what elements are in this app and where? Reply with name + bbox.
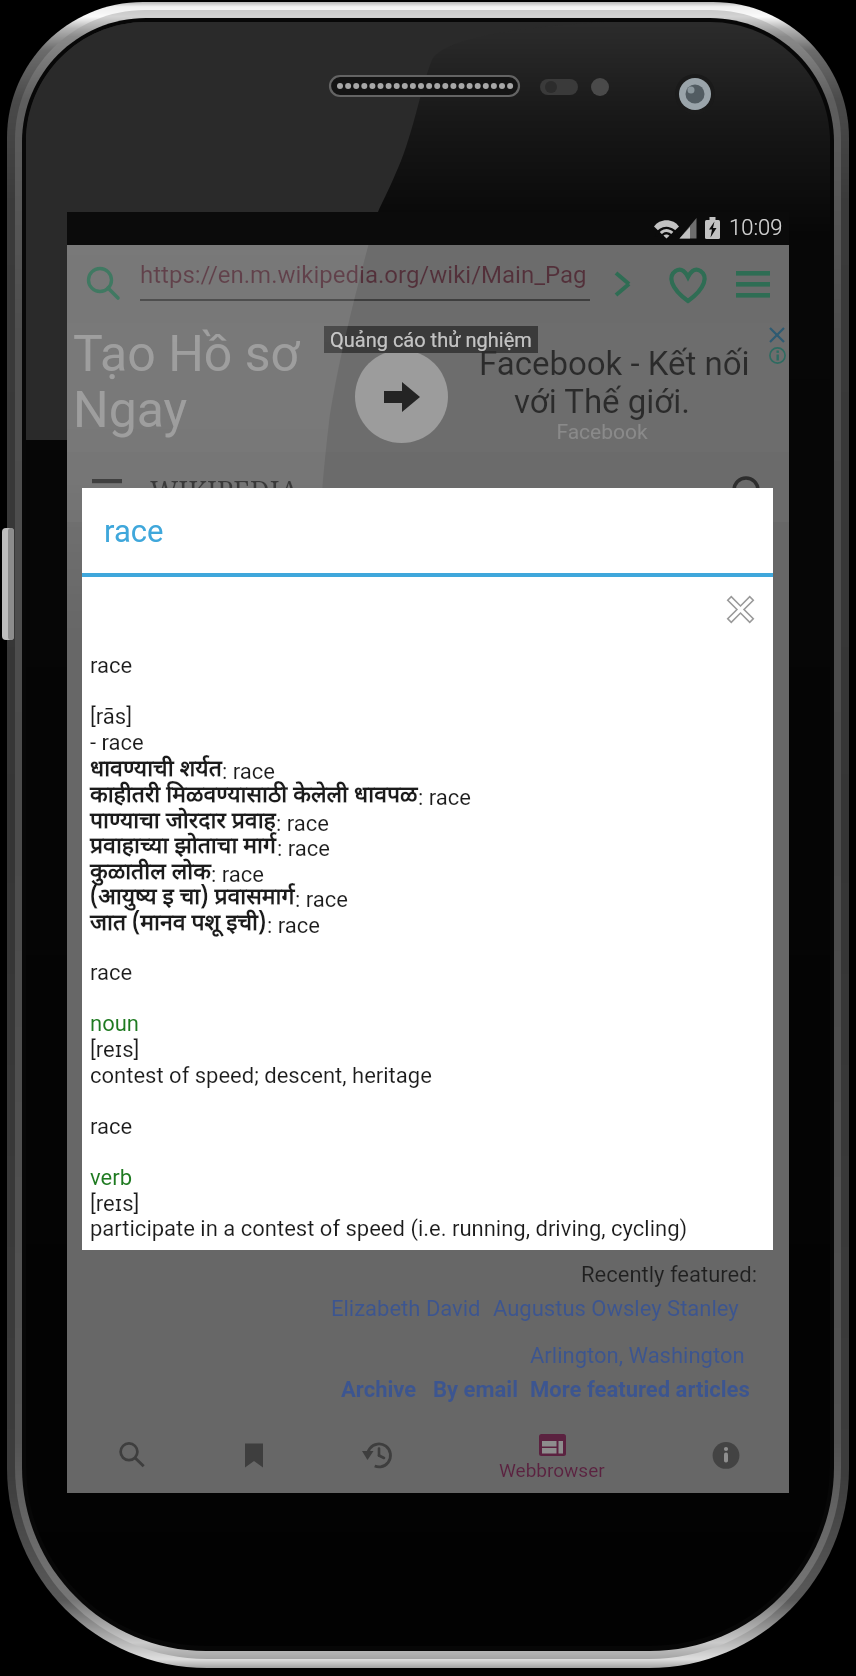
button[interactable]: Augustus Owsley Stanley	[493, 1296, 739, 1322]
button[interactable]: Close ad	[770, 328, 784, 342]
staticText: noun	[90, 1011, 139, 1037]
button[interactable]: Search	[73, 245, 135, 323]
staticText: : race	[295, 887, 348, 913]
staticText: participate in a contest of speed (i.e. …	[90, 1216, 688, 1242]
staticText: - race	[90, 730, 144, 756]
button[interactable]: Arlington, Washington	[530, 1343, 745, 1369]
staticText: : race	[267, 913, 320, 939]
button[interactable]: Ad info	[769, 347, 786, 364]
staticText: Webbrowser	[499, 1459, 605, 1481]
button[interactable]: Archive	[341, 1377, 417, 1403]
button[interactable]: Search	[67, 1415, 191, 1493]
staticText: [reɪs]	[90, 1191, 140, 1217]
staticText: Recently featured:	[581, 1262, 757, 1288]
button[interactable]: History	[317, 1415, 441, 1493]
button[interactable]: Menu	[723, 245, 783, 323]
staticText: : race	[211, 862, 264, 888]
button[interactable]: Elizabeth David	[331, 1296, 481, 1322]
staticText: Ngay	[73, 381, 188, 440]
staticText: कुळातील लोक	[90, 858, 211, 888]
staticText: : race	[276, 811, 329, 837]
button[interactable]: Ad call to action	[355, 350, 448, 443]
staticText: [reɪs]	[90, 1037, 140, 1063]
button[interactable]: Favourite	[658, 245, 718, 323]
staticText: race	[90, 653, 133, 679]
staticText: Tạo Hồ sơ	[73, 325, 300, 384]
staticText: Facebook - Kết nối	[479, 344, 750, 383]
button[interactable]: Webbrowser	[490, 1415, 614, 1493]
staticText: : race	[418, 785, 471, 811]
staticText: धावण्याची शर्यत	[90, 755, 222, 785]
staticText: WIKIPEDIA	[150, 472, 299, 509]
staticText: [rās]	[90, 704, 133, 730]
staticText: Facebook	[457, 420, 747, 445]
staticText: race	[90, 1114, 133, 1140]
staticText: : race	[222, 759, 275, 785]
staticText: प्रवाहाच्या झोताचा मार्ग	[90, 832, 277, 862]
staticText: काहीतरी मिळवण्यासाठी केलेली धावपळ	[90, 781, 418, 811]
staticText: với Thế giới.	[457, 382, 747, 421]
staticText: 10:09	[729, 215, 783, 241]
staticText: contest of speed; descent, heritage	[90, 1063, 432, 1089]
button[interactable]: By email	[433, 1377, 518, 1403]
button[interactable]: More featured articles	[530, 1377, 750, 1403]
button[interactable]: Close	[727, 596, 754, 623]
button[interactable]: Go	[594, 245, 650, 323]
staticText: पाण्याचा जोरदार प्रवाह	[90, 807, 276, 837]
button[interactable]: Info	[664, 1415, 788, 1493]
staticText: जात (मानव पशू इची)	[90, 909, 267, 939]
staticText: : race	[277, 836, 330, 862]
button[interactable]: Bookmarks	[192, 1415, 316, 1493]
staticText: race	[90, 960, 133, 986]
staticText: verb	[90, 1165, 132, 1191]
staticText: https://en.m.wikipedia.org/wiki/Main_Pag	[140, 261, 587, 289]
staticText: race	[104, 513, 164, 549]
staticText: (आयुष्य इ चा) प्रवासमार्ग	[90, 883, 295, 913]
staticText: Quảng cáo thử nghiệm	[330, 328, 532, 351]
